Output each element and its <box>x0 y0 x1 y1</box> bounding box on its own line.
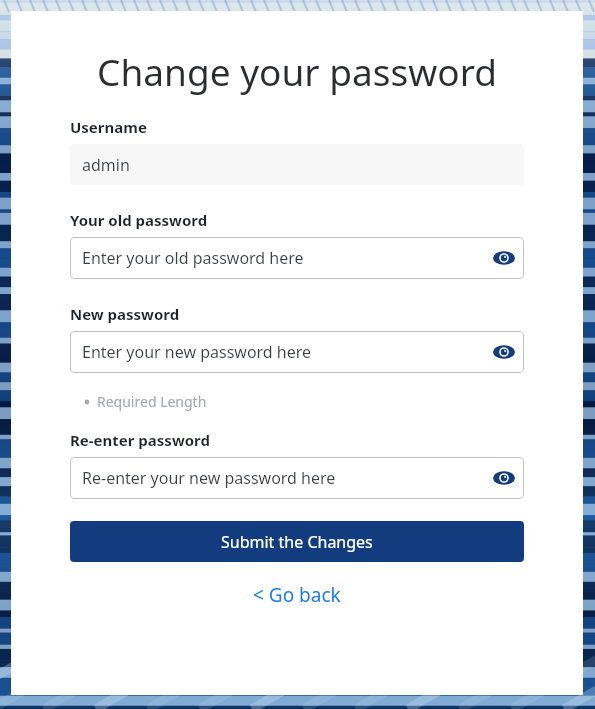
button[interactable]: Enter your old password here <box>70 237 524 279</box>
button[interactable]: Enter your new password here <box>70 331 524 373</box>
staticText: Re-enter password <box>70 430 210 450</box>
button[interactable]: < Go back <box>247 580 347 610</box>
button[interactable]: Re-enter your new password here <box>70 457 524 499</box>
button[interactable]: Show old password <box>487 241 521 275</box>
staticText: Enter your new password here <box>82 341 312 363</box>
button[interactable]: admin <box>70 144 524 185</box>
staticText: Change your password <box>11 46 583 96</box>
staticText: Submit the Changes <box>221 531 373 553</box>
staticText: New password <box>70 304 180 324</box>
button[interactable]: Show re-entered password <box>487 461 521 495</box>
button[interactable]: Show new password <box>487 335 521 369</box>
staticText: Required Length <box>97 392 207 411</box>
staticText: Username <box>70 117 147 137</box>
staticText: Your old password <box>70 210 208 230</box>
button[interactable]: Submit the Changes <box>70 521 524 562</box>
staticText: < Go back <box>253 582 341 608</box>
staticText: Enter your old password here <box>82 247 304 269</box>
staticText: Re-enter your new password here <box>82 467 336 489</box>
staticText: admin <box>82 154 130 176</box>
